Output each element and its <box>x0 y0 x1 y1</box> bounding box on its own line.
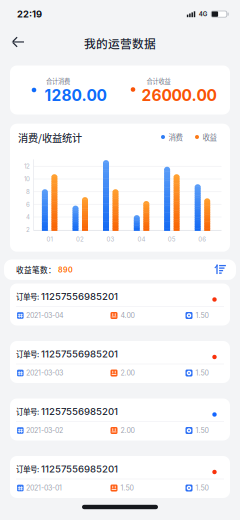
staticText: 消费/收益统计 <box>18 130 82 145</box>
staticText: 4 <box>26 213 30 221</box>
staticText: 我的运营数据 <box>84 35 156 52</box>
staticText: 12 <box>24 163 30 170</box>
staticText: 890 <box>58 265 73 274</box>
button[interactable]: Sort <box>0 0 240 520</box>
staticText: 消费 <box>168 132 182 142</box>
staticText: 2021-03-03 <box>26 369 63 377</box>
staticText: 订单号: <box>16 406 41 417</box>
staticText: 1280.00 <box>44 86 106 105</box>
staticText: 合计消费 <box>46 76 70 86</box>
staticText: 6 <box>26 201 30 208</box>
staticText: 4.00 <box>120 311 134 320</box>
staticText: 22:19 <box>17 8 42 20</box>
button[interactable]: Back <box>0 0 240 520</box>
staticText: 订单号: <box>16 349 41 359</box>
staticText: 1.50 <box>195 484 208 492</box>
staticText: 订单号: <box>16 464 41 474</box>
staticText: 收益笔数： <box>16 264 58 275</box>
staticText: 2021-03-04 <box>26 311 64 320</box>
staticText: 11257556985201 <box>41 348 118 360</box>
staticText: 04 <box>137 235 145 243</box>
staticText: 1.50 <box>195 311 208 320</box>
staticText: 06 <box>198 235 206 243</box>
staticText: 11257556985201 <box>41 463 118 475</box>
staticText: 8 <box>26 188 30 195</box>
staticText: 4G <box>199 10 208 18</box>
button[interactable] <box>0 0 240 520</box>
staticText: 2021-03-01 <box>26 484 62 492</box>
staticText: 10 <box>24 175 30 183</box>
button[interactable] <box>0 0 240 520</box>
staticText: 01 <box>46 235 52 243</box>
staticText: 1.50 <box>120 484 133 492</box>
staticText: 02 <box>76 235 84 243</box>
staticText: 2 <box>26 226 30 233</box>
staticText: 1.50 <box>195 369 208 377</box>
staticText: 1.50 <box>195 426 208 435</box>
staticText: 2.00 <box>120 426 134 435</box>
staticText: 合计收益 <box>146 76 170 86</box>
staticText: 订单号: <box>16 291 41 302</box>
staticText: 05 <box>168 235 176 243</box>
staticText: 26000.00 <box>141 86 216 105</box>
button[interactable] <box>0 0 240 520</box>
staticText: 2.00 <box>120 369 134 377</box>
button[interactable] <box>0 0 240 520</box>
staticText: 11257556985201 <box>41 291 118 302</box>
staticText: 11257556985201 <box>41 406 118 417</box>
staticText: 2021-03-02 <box>26 426 63 435</box>
staticText: 03 <box>107 235 115 243</box>
staticText: 收益 <box>202 132 216 142</box>
